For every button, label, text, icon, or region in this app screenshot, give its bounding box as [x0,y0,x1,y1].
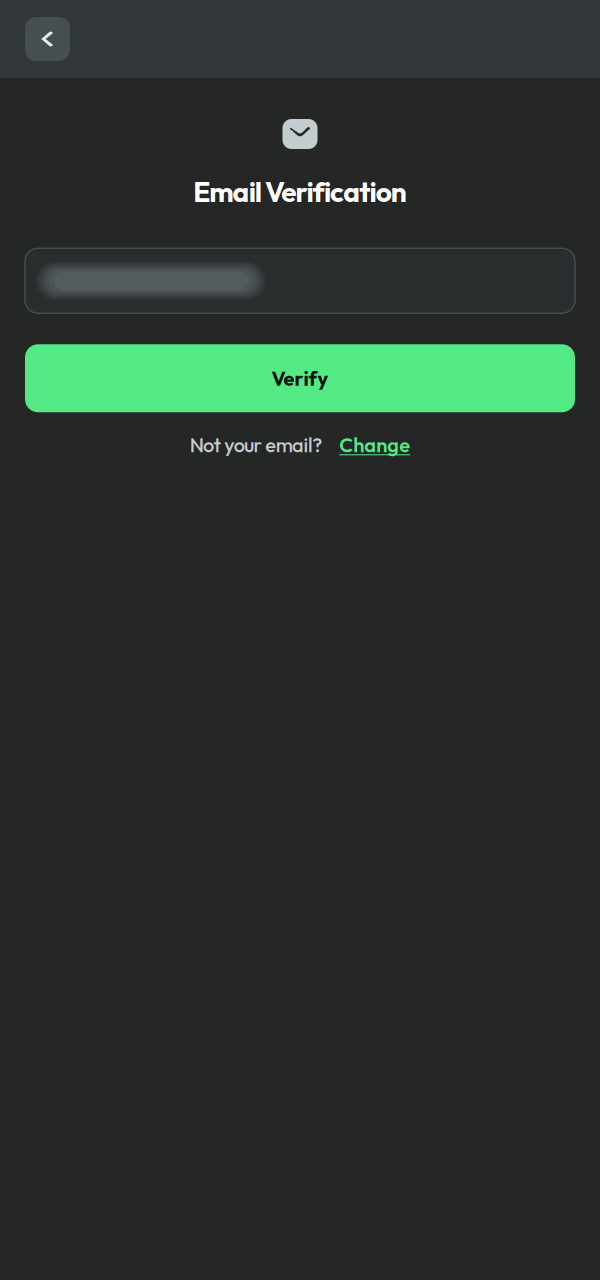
staticText: Verify [271,366,328,391]
button[interactable]: Email address [25,248,575,313]
button[interactable]: Verify [25,344,575,412]
button[interactable]: Back [25,17,70,61]
staticText: Change [339,432,410,457]
staticText: Email Verification [193,174,407,209]
staticText: Not your email? [190,432,322,457]
button[interactable]: Change [339,432,410,457]
